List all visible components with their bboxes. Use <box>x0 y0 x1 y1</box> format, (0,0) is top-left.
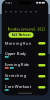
staticText: Stretching <box>5 73 26 78</box>
staticText: M <box>34 10 36 13</box>
staticText: M <box>29 10 31 13</box>
staticText: Evening Ride <box>5 62 29 67</box>
staticText: 9:41 <box>5 1 12 4</box>
button[interactable]: Add Workout <box>8 32 33 38</box>
staticText: Thursday, January 6, 2022 <box>7 28 45 31</box>
staticText: Add Workout <box>11 33 30 37</box>
button[interactable]: Morning Run <box>2 38 48 49</box>
staticText: Core Workout <box>5 84 32 89</box>
staticText: Morning Run <box>5 41 32 46</box>
staticText: M <box>9 10 11 13</box>
button[interactable]: Core Workout <box>2 82 48 93</box>
button[interactable]: Evening Ride <box>2 60 48 71</box>
staticText: Upper Body <box>5 51 26 56</box>
button[interactable]: Stretching <box>2 71 48 82</box>
button[interactable]: Upper Body <box>2 49 48 60</box>
staticText: M <box>4 10 6 13</box>
staticText: M <box>24 10 26 13</box>
staticText: M <box>14 10 16 13</box>
staticText: M <box>19 10 21 13</box>
